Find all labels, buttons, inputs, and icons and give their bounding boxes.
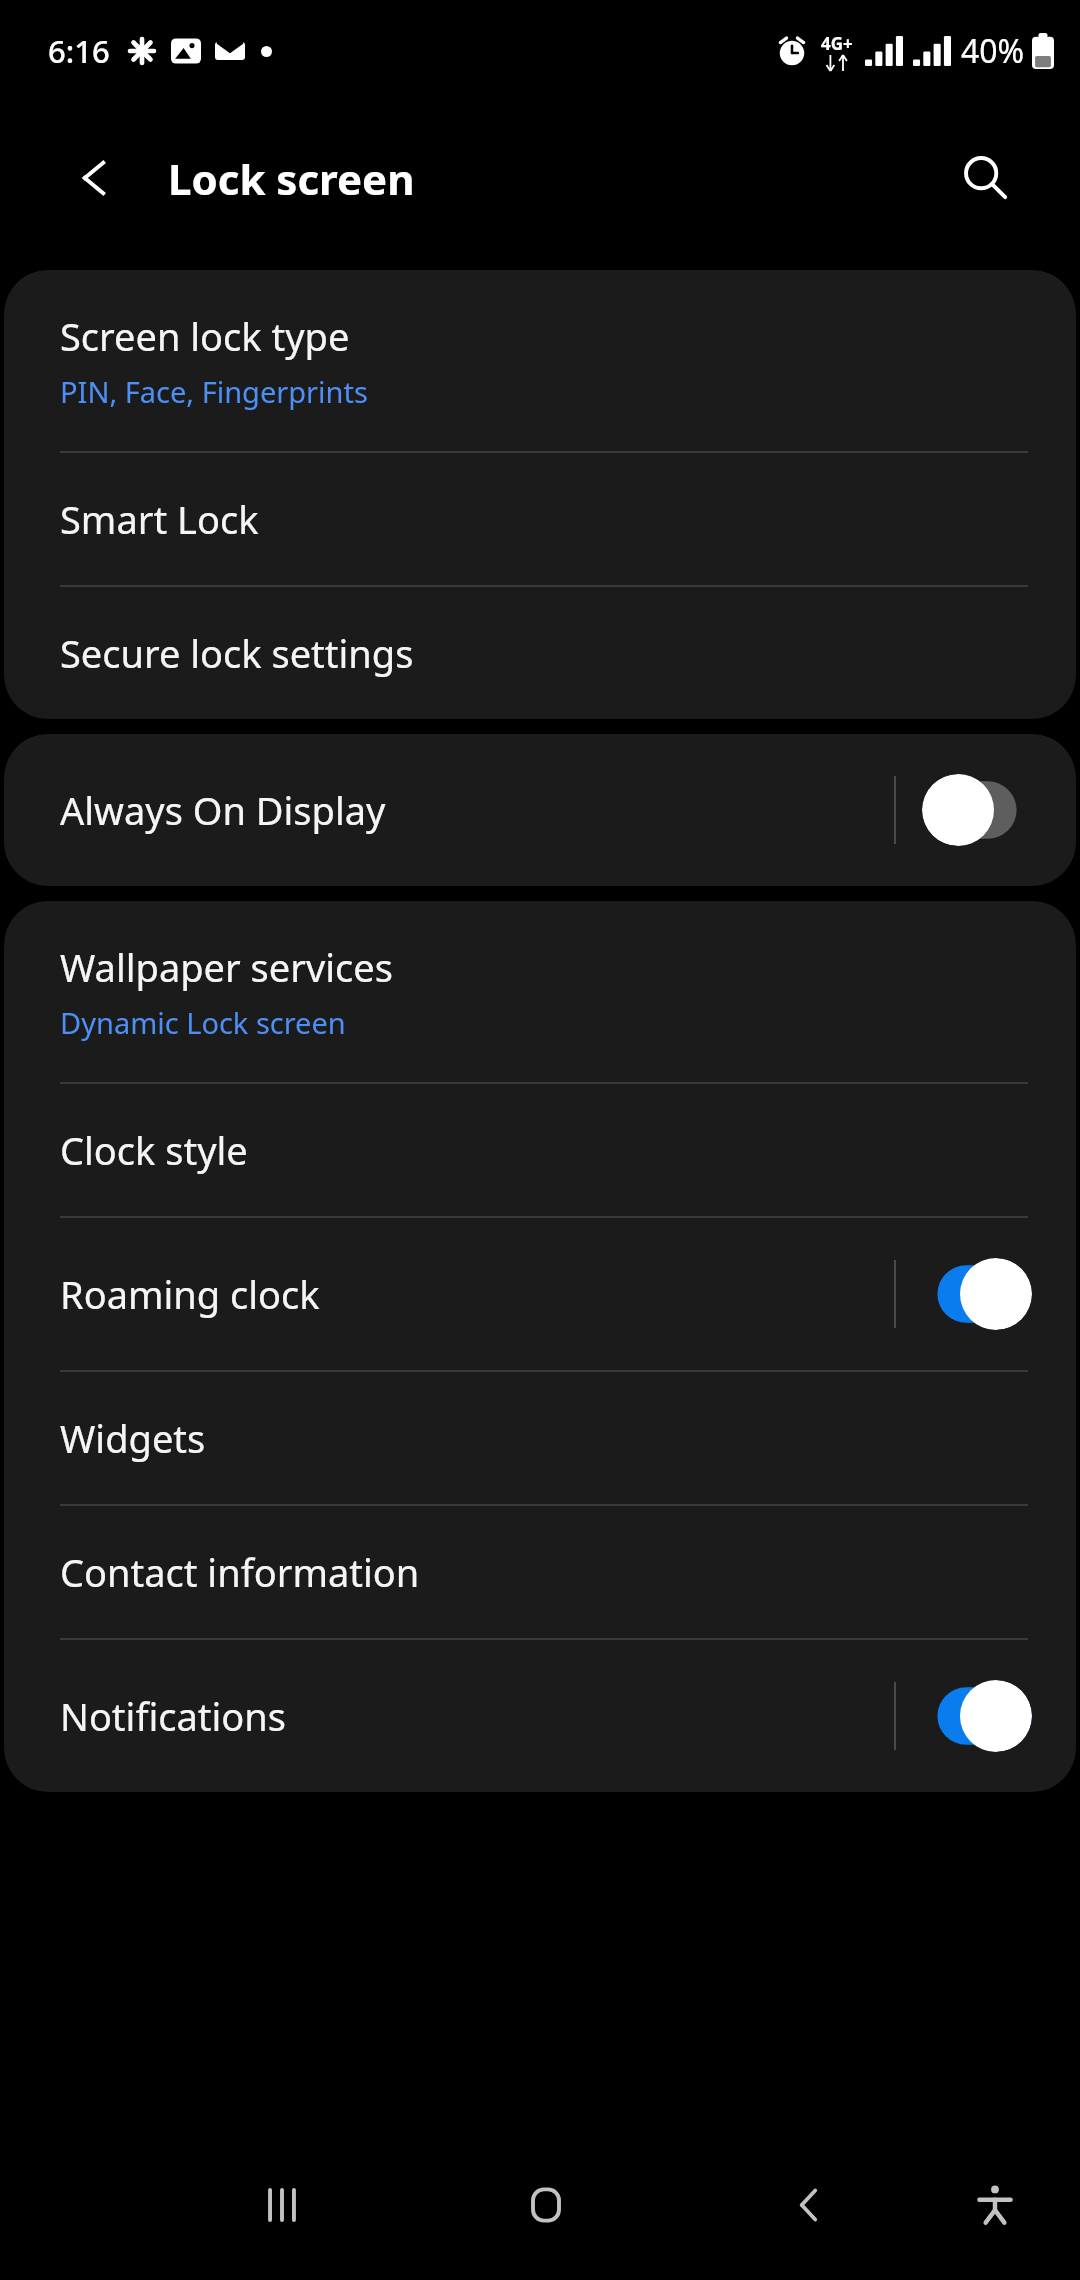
button[interactable]: Smart Lock bbox=[4, 453, 1076, 585]
button[interactable]: Contact information bbox=[4, 1506, 1076, 1638]
button[interactable]: Search bbox=[937, 130, 1033, 226]
button[interactable]: Always On Display bbox=[4, 734, 1076, 886]
staticText: Smart Lock bbox=[60, 493, 259, 545]
button[interactable]: Roaming clock bbox=[4, 1218, 1076, 1370]
staticText: Widgets bbox=[60, 1412, 206, 1464]
button[interactable]: Always On Display off bbox=[922, 774, 1032, 846]
staticText: 6:16 bbox=[48, 30, 110, 72]
staticText: Notifications bbox=[60, 1690, 894, 1742]
button[interactable]: Home bbox=[414, 2130, 677, 2280]
staticText: Screen lock type bbox=[60, 310, 350, 362]
staticText: 40% bbox=[961, 29, 1025, 73]
button[interactable]: Accessibility bbox=[940, 2130, 1050, 2280]
button[interactable]: Roaming clock on bbox=[922, 1258, 1032, 1330]
staticText: Wallpaper services bbox=[60, 941, 393, 993]
button[interactable]: Back bbox=[677, 2130, 940, 2280]
staticText: Secure lock settings bbox=[60, 627, 414, 679]
staticText: Clock style bbox=[60, 1124, 248, 1176]
button[interactable]: Secure lock settings bbox=[4, 587, 1076, 719]
button[interactable]: Widgets bbox=[4, 1372, 1076, 1504]
button[interactable]: Wallpaper services bbox=[4, 901, 1076, 1082]
staticText: Always On Display bbox=[60, 784, 894, 836]
button[interactable]: Back bbox=[46, 130, 142, 226]
staticText: 4G+ bbox=[821, 32, 853, 55]
button[interactable]: Recents bbox=[150, 2130, 414, 2280]
staticText: PIN, Face, Fingerprints bbox=[60, 372, 368, 411]
staticText: Dynamic Lock screen bbox=[60, 1003, 346, 1042]
staticText: Contact information bbox=[60, 1546, 420, 1598]
button[interactable]: Clock style bbox=[4, 1084, 1076, 1216]
staticText: Lock screen bbox=[168, 150, 415, 207]
button[interactable]: Screen lock type bbox=[4, 270, 1076, 451]
staticText: Roaming clock bbox=[60, 1268, 894, 1320]
button[interactable]: Notifications on bbox=[922, 1680, 1032, 1752]
button[interactable]: Notifications bbox=[4, 1640, 1076, 1792]
